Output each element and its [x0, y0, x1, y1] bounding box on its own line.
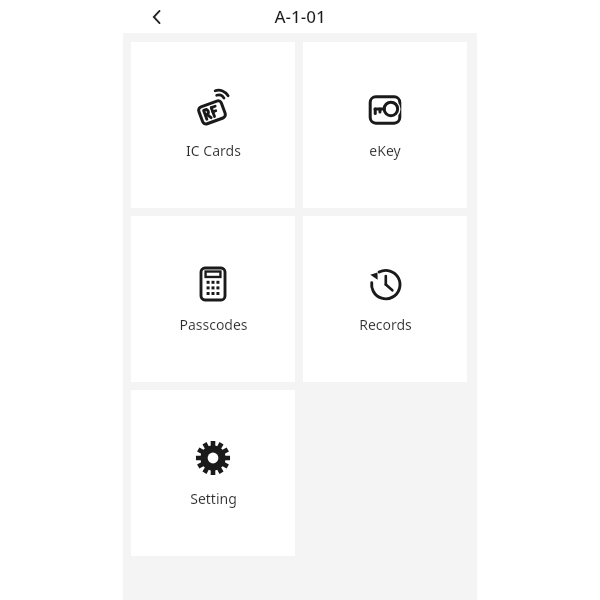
button[interactable]: eKey — [303, 42, 467, 208]
staticText: A-1-01 — [274, 5, 326, 28]
button[interactable]: IC Cards — [131, 42, 295, 208]
button[interactable]: Records — [303, 216, 467, 382]
staticText: Setting — [190, 489, 237, 508]
staticText: IC Cards — [186, 141, 241, 160]
staticText: Records — [359, 315, 412, 334]
staticText: Passcodes — [179, 315, 248, 334]
button[interactable]: Passcodes — [131, 216, 295, 382]
staticText: eKey — [369, 141, 401, 160]
button[interactable]: Setting — [131, 390, 295, 556]
button[interactable]: Back — [140, 0, 174, 33]
